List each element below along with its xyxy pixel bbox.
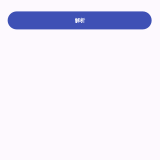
staticText: 解析 bbox=[75, 17, 85, 24]
button[interactable]: 解析 bbox=[8, 11, 152, 29]
